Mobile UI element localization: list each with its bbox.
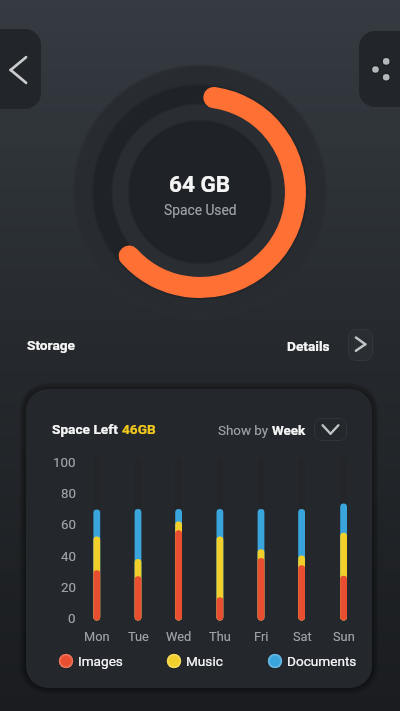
staticText: Sun (333, 629, 355, 644)
button[interactable]: Change period (314, 418, 347, 441)
staticText: Thu (209, 629, 231, 644)
staticText: 64 GB (169, 171, 231, 197)
staticText: Week (272, 423, 306, 439)
staticText: Space Left (52, 421, 122, 437)
staticText: 100 (53, 455, 76, 471)
staticText: Mon (84, 629, 110, 644)
staticText: 0 (68, 611, 76, 627)
staticText: 60 (61, 517, 76, 533)
staticText: 20 (61, 580, 76, 596)
staticText: Fri (254, 629, 269, 644)
staticText: Show by (218, 423, 272, 439)
button[interactable]: Details (348, 329, 373, 361)
button[interactable]: Documents (267, 653, 357, 669)
button[interactable]: Back (0, 29, 41, 109)
staticText: Space Used (164, 202, 237, 218)
staticText: 46GB (122, 421, 156, 437)
button[interactable]: Share (359, 31, 400, 107)
staticText: Music (186, 653, 223, 669)
staticText: Details (287, 338, 330, 354)
staticText: Tue (128, 629, 149, 644)
button[interactable]: Images (58, 653, 123, 669)
staticText: 40 (61, 549, 76, 565)
staticText: Documents (287, 653, 357, 669)
staticText: Storage (27, 337, 75, 353)
staticText: Sat (293, 629, 312, 644)
staticText: Images (78, 653, 123, 669)
staticText: Wed (166, 629, 192, 644)
staticText: 80 (61, 486, 76, 502)
button[interactable]: Music (166, 653, 223, 669)
